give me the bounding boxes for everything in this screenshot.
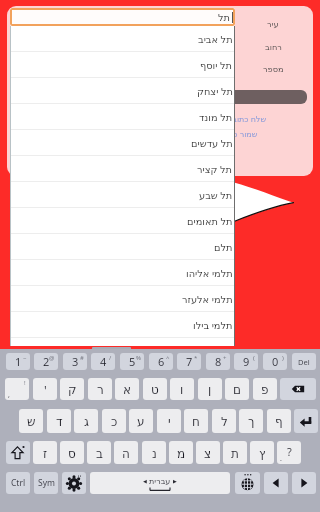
- staticText: ע: [137, 415, 145, 429]
- staticText: ף: [275, 415, 283, 429]
- button[interactable]: ץ: [250, 441, 274, 464]
- button[interactable]: רחוב: [233, 41, 313, 53]
- staticText: Ctrl: [11, 477, 26, 489]
- button[interactable]: Delete: [292, 353, 316, 370]
- button[interactable]: כ: [102, 409, 126, 433]
- staticText: שלח כתובת: [227, 113, 267, 124]
- button[interactable]: ה: [114, 441, 138, 464]
- button[interactable]: ע: [129, 409, 153, 433]
- button[interactable]: תלמי בילו: [10, 312, 235, 338]
- staticText: +: [223, 354, 227, 362]
- button[interactable]: ?: [277, 441, 301, 464]
- button[interactable]: ן: [198, 378, 222, 400]
- button[interactable]: ד: [47, 409, 71, 433]
- button[interactable]: Settings: [62, 472, 86, 494]
- button[interactable]: ף: [267, 409, 291, 433]
- button[interactable]: 4: [91, 353, 115, 370]
- staticText: 2: [43, 354, 50, 369]
- staticText: @: [49, 354, 55, 362]
- button[interactable]: שלח כתובת: [7, 112, 313, 124]
- button[interactable]: Backspace: [280, 378, 316, 400]
- button[interactable]: מספר: [233, 63, 313, 75]
- staticText: ך: [248, 415, 255, 429]
- button[interactable]: ל: [212, 409, 236, 433]
- button[interactable]: ז: [33, 441, 57, 464]
- button[interactable]: ט: [143, 378, 167, 400]
- button[interactable]: צ: [196, 441, 220, 464]
- button[interactable]: Move right: [292, 472, 316, 494]
- button[interactable]: י: [157, 409, 181, 433]
- button[interactable]: Ctrl: [6, 472, 30, 494]
- button[interactable]: ש: [19, 409, 43, 433]
- button[interactable]: תל אביב: [10, 26, 235, 52]
- button[interactable]: Sym: [34, 472, 58, 494]
- button[interactable]: שמור כתובת: [7, 127, 313, 139]
- staticText: תלמי בילו: [193, 319, 233, 332]
- button[interactable]: תלמי אלעזר: [10, 286, 235, 312]
- button[interactable]: תלם: [10, 234, 235, 260]
- staticText: 0: [272, 354, 279, 369]
- button[interactable]: תל: [10, 8, 235, 26]
- button[interactable]: 5: [120, 353, 144, 370]
- button[interactable]: Change language: [235, 472, 260, 494]
- button[interactable]: ': [33, 378, 57, 400]
- button[interactable]: ר: [88, 378, 112, 400]
- staticText: Del: [298, 357, 310, 367]
- staticText: י: [168, 415, 171, 429]
- button[interactable]: תל יצחק: [10, 78, 235, 104]
- button[interactable]: פ: [253, 378, 277, 400]
- staticText: צ: [204, 447, 212, 461]
- button[interactable]: תל קציר: [10, 156, 235, 182]
- button[interactable]: 1: [6, 353, 30, 370]
- button[interactable]: 2: [34, 353, 58, 370]
- button[interactable]: עיר: [233, 18, 313, 30]
- button[interactable]: ו: [170, 378, 194, 400]
- button[interactable]: תל עדשים: [10, 130, 235, 156]
- staticText: ג: [84, 415, 89, 429]
- button[interactable]: נ: [142, 441, 166, 464]
- button[interactable]: ק: [60, 378, 84, 400]
- staticText: ב: [96, 447, 103, 461]
- button[interactable]: 0: [263, 353, 287, 370]
- button[interactable]: א: [115, 378, 139, 400]
- staticText: תלמי אלעזר: [182, 293, 233, 306]
- staticText: נ: [152, 447, 157, 461]
- button[interactable]: ס: [60, 441, 84, 464]
- button[interactable]: Space: [90, 472, 230, 494]
- button[interactable]: ב: [87, 441, 111, 464]
- button[interactable]: 3: [63, 353, 87, 370]
- button[interactable]: Move left: [264, 472, 288, 494]
- button[interactable]: ח: [184, 409, 208, 433]
- staticText: מ: [177, 447, 186, 461]
- button[interactable]: ת: [223, 441, 247, 464]
- button[interactable]: 7: [177, 353, 201, 370]
- staticText: .: [280, 454, 282, 464]
- button[interactable]: Enter: [294, 409, 318, 433]
- button[interactable]: Shift: [6, 441, 30, 464]
- button[interactable]: תלמי אליהו: [10, 260, 235, 286]
- staticText: *: [194, 354, 198, 362]
- button[interactable]: [27, 90, 307, 104]
- button[interactable]: ם: [225, 378, 249, 400]
- button[interactable]: תל יוסף: [10, 52, 235, 78]
- button[interactable]: ך: [239, 409, 263, 433]
- staticText: ו: [180, 383, 184, 397]
- button[interactable]: תל מונד: [10, 104, 235, 130]
- button[interactable]: תל תאומים: [10, 208, 235, 234]
- staticText: (: [253, 354, 255, 362]
- staticText: תלמי אליהו: [186, 267, 233, 280]
- staticText: /: [109, 354, 112, 362]
- button[interactable]: 6: [149, 353, 173, 370]
- staticText: 7: [186, 354, 193, 369]
- staticText: Sym: [38, 477, 55, 489]
- staticText: רחוב: [265, 42, 282, 52]
- button[interactable]: מ: [169, 441, 193, 464]
- button[interactable]: ג: [74, 409, 98, 433]
- staticText: תל קציר: [197, 163, 233, 176]
- button[interactable]: תל שבע: [10, 182, 235, 208]
- button[interactable]: !: [5, 378, 29, 400]
- button[interactable]: 9: [234, 353, 258, 370]
- staticText: ל: [221, 415, 228, 429]
- staticText: 1: [15, 354, 22, 369]
- button[interactable]: 8: [206, 353, 230, 370]
